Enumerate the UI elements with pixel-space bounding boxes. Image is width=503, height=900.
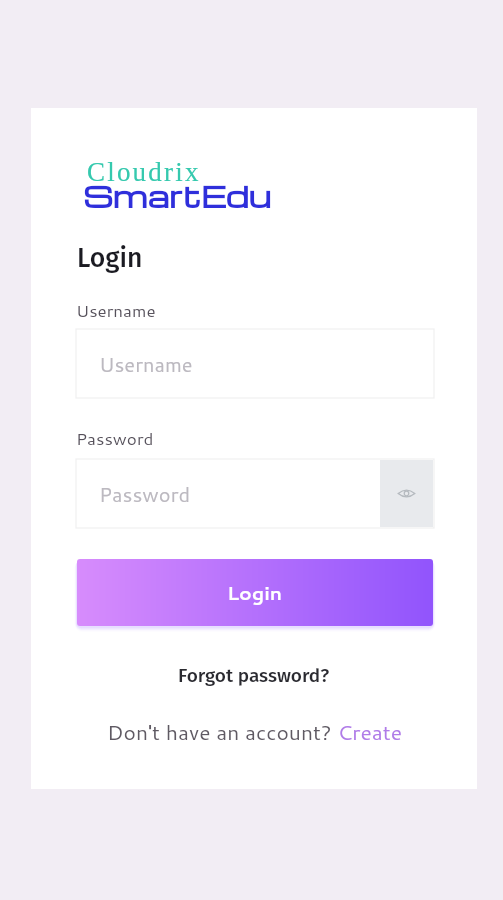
button[interactable]: Login — [77, 559, 433, 626]
button[interactable]: Username — [76, 329, 434, 398]
staticText: Username — [76, 298, 156, 322]
staticText: Username — [99, 350, 193, 378]
button[interactable]: Password — [76, 459, 434, 528]
button[interactable]: Show password — [380, 460, 433, 527]
staticText: Cloudrix — [87, 157, 201, 187]
button[interactable]: Forgot password? — [174, 660, 334, 691]
button[interactable]: Don't have an account? Create — [103, 713, 406, 751]
staticText: Password — [99, 480, 191, 508]
staticText: SmartEdu — [83, 175, 271, 216]
staticText: Password — [76, 426, 154, 450]
staticText: Login — [227, 579, 283, 606]
staticText: Login — [77, 242, 143, 274]
